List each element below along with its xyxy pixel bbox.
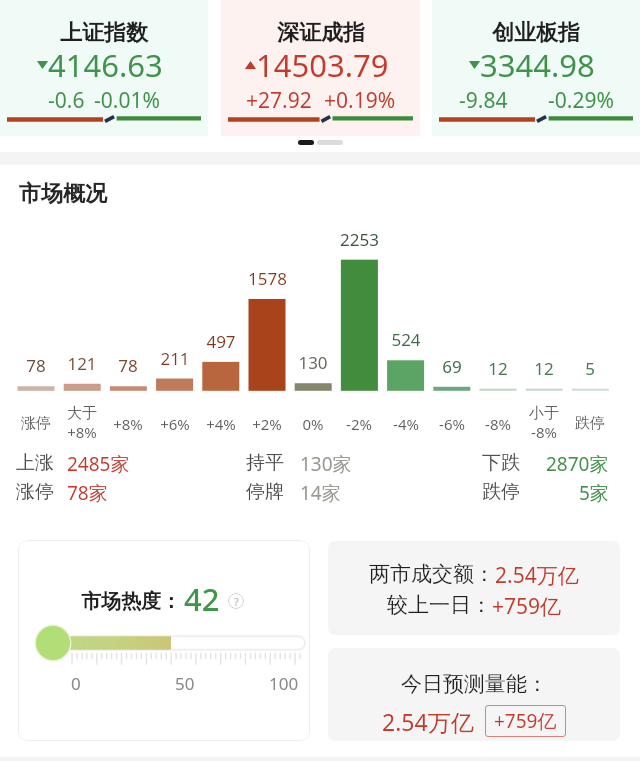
staticText: 下跌 xyxy=(482,451,520,475)
staticText: 涨停 xyxy=(21,414,51,433)
staticText: 78 xyxy=(26,354,46,376)
staticText: +8% xyxy=(113,414,143,434)
staticText: -0.01% xyxy=(94,86,160,115)
staticText: 创业板指 xyxy=(492,19,580,47)
staticText: -4% xyxy=(393,414,419,434)
staticText: 2.54万亿 xyxy=(382,706,474,737)
staticText: 130家 xyxy=(300,451,352,477)
button[interactable]: 市场热度： xyxy=(18,540,310,741)
staticText: 两市成交额： xyxy=(369,561,495,587)
staticText: 12 xyxy=(488,357,508,379)
staticText: 2253 xyxy=(340,228,379,250)
staticText: 12 xyxy=(534,357,554,379)
staticText: 3344.98 xyxy=(480,44,595,86)
staticText: 市场热度： xyxy=(81,589,181,614)
staticText: +27.92 xyxy=(246,86,312,115)
staticText: 5 xyxy=(585,357,595,379)
staticText: +2% xyxy=(252,414,282,434)
button[interactable]: 两市成交额： xyxy=(328,541,620,635)
staticText: +4% xyxy=(206,414,236,434)
button[interactable]: 创业板指 xyxy=(432,0,640,136)
staticText: 524 xyxy=(391,328,421,350)
staticText: 大于 +8% xyxy=(67,404,97,442)
staticText: +0.19% xyxy=(324,86,396,115)
staticText: 今日预测量能： xyxy=(401,671,548,697)
staticText: 50 xyxy=(175,672,195,695)
staticText: -0.6 xyxy=(48,86,85,115)
staticText: 78 xyxy=(118,354,138,376)
staticText: -8% xyxy=(485,414,511,434)
staticText: 14家 xyxy=(300,480,341,506)
staticText: +759亿 xyxy=(494,708,557,734)
staticText: 上证指数 xyxy=(60,19,148,47)
staticText: -0.29% xyxy=(548,86,614,115)
staticText: 深证成指 xyxy=(277,19,365,47)
button[interactable]: 今日预测量能： xyxy=(328,648,620,741)
staticText: 0 xyxy=(71,672,81,695)
staticText: 涨停 xyxy=(16,480,54,504)
staticText: -6% xyxy=(439,414,465,434)
staticText: 121 xyxy=(67,352,97,374)
button[interactable]: 帮助 xyxy=(228,593,244,609)
staticText: 跌停 xyxy=(482,480,520,504)
staticText: 2485家 xyxy=(67,451,130,477)
staticText: 小于 -8% xyxy=(529,404,559,442)
staticText: 4146.63 xyxy=(48,44,163,86)
staticText: 1578 xyxy=(248,267,287,289)
staticText: 上涨 xyxy=(16,451,54,475)
staticText: 211 xyxy=(160,347,190,369)
staticText: 100 xyxy=(269,672,299,695)
staticText: 2.54万亿 xyxy=(495,561,579,590)
staticText: 较上一日： xyxy=(387,592,492,618)
staticText: 69 xyxy=(442,355,462,377)
staticText: 跌停 xyxy=(575,414,605,433)
staticText: 市场概况 xyxy=(19,180,107,208)
staticText: 2870家 xyxy=(546,451,609,477)
staticText: 130 xyxy=(298,351,328,373)
staticText: -9.84 xyxy=(459,86,508,115)
staticText: +759亿 xyxy=(492,592,562,621)
staticText: 0% xyxy=(302,414,324,434)
staticText: -2% xyxy=(346,414,372,434)
staticText: ? xyxy=(234,594,239,609)
button[interactable]: 上证指数 xyxy=(0,0,208,136)
staticText: 78家 xyxy=(67,480,108,506)
staticText: 42 xyxy=(184,578,220,620)
staticText: 停牌 xyxy=(246,480,284,504)
button[interactable]: 深证成指 xyxy=(221,0,420,136)
staticText: 497 xyxy=(206,330,236,352)
staticText: 14503.79 xyxy=(256,44,389,86)
staticText: 持平 xyxy=(246,451,284,475)
staticText: +6% xyxy=(160,414,190,434)
staticText: 5家 xyxy=(579,480,609,506)
